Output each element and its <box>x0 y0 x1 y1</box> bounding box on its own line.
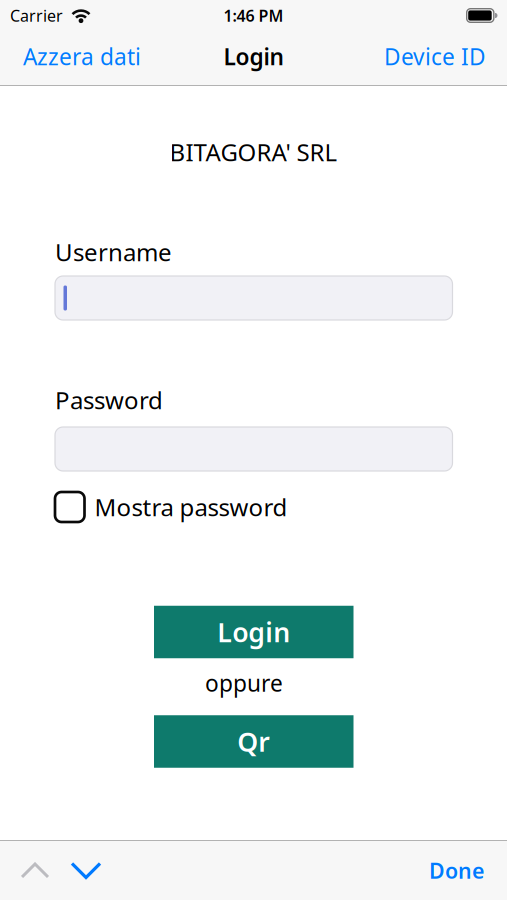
staticText: Login <box>223 41 283 71</box>
button[interactable]: Done <box>429 856 484 885</box>
button[interactable]: Next field <box>72 863 100 877</box>
button[interactable]: Mostra password <box>55 491 453 523</box>
button[interactable]: Azzera dati <box>23 41 141 71</box>
staticText: BITAGORA' SRL <box>169 136 337 168</box>
staticText: Mostra password <box>94 491 287 523</box>
button[interactable]: Device ID <box>384 41 486 71</box>
button[interactable]: Login <box>154 606 353 658</box>
staticText: Device ID <box>384 41 486 71</box>
staticText: Done <box>429 856 484 885</box>
staticText: Password <box>55 384 163 416</box>
button[interactable]: Username <box>55 276 452 320</box>
staticText: oppure <box>205 668 283 698</box>
staticText: Login <box>217 614 290 650</box>
staticText: 1:46 PM <box>223 5 283 26</box>
button[interactable]: Qr <box>154 715 353 768</box>
staticText: Qr <box>237 724 270 759</box>
staticText: Carrier <box>10 5 63 26</box>
button[interactable]: Password <box>55 427 452 471</box>
staticText: Azzera dati <box>23 41 141 71</box>
button[interactable]: Previous field <box>22 864 48 877</box>
staticText: Username <box>55 236 172 268</box>
